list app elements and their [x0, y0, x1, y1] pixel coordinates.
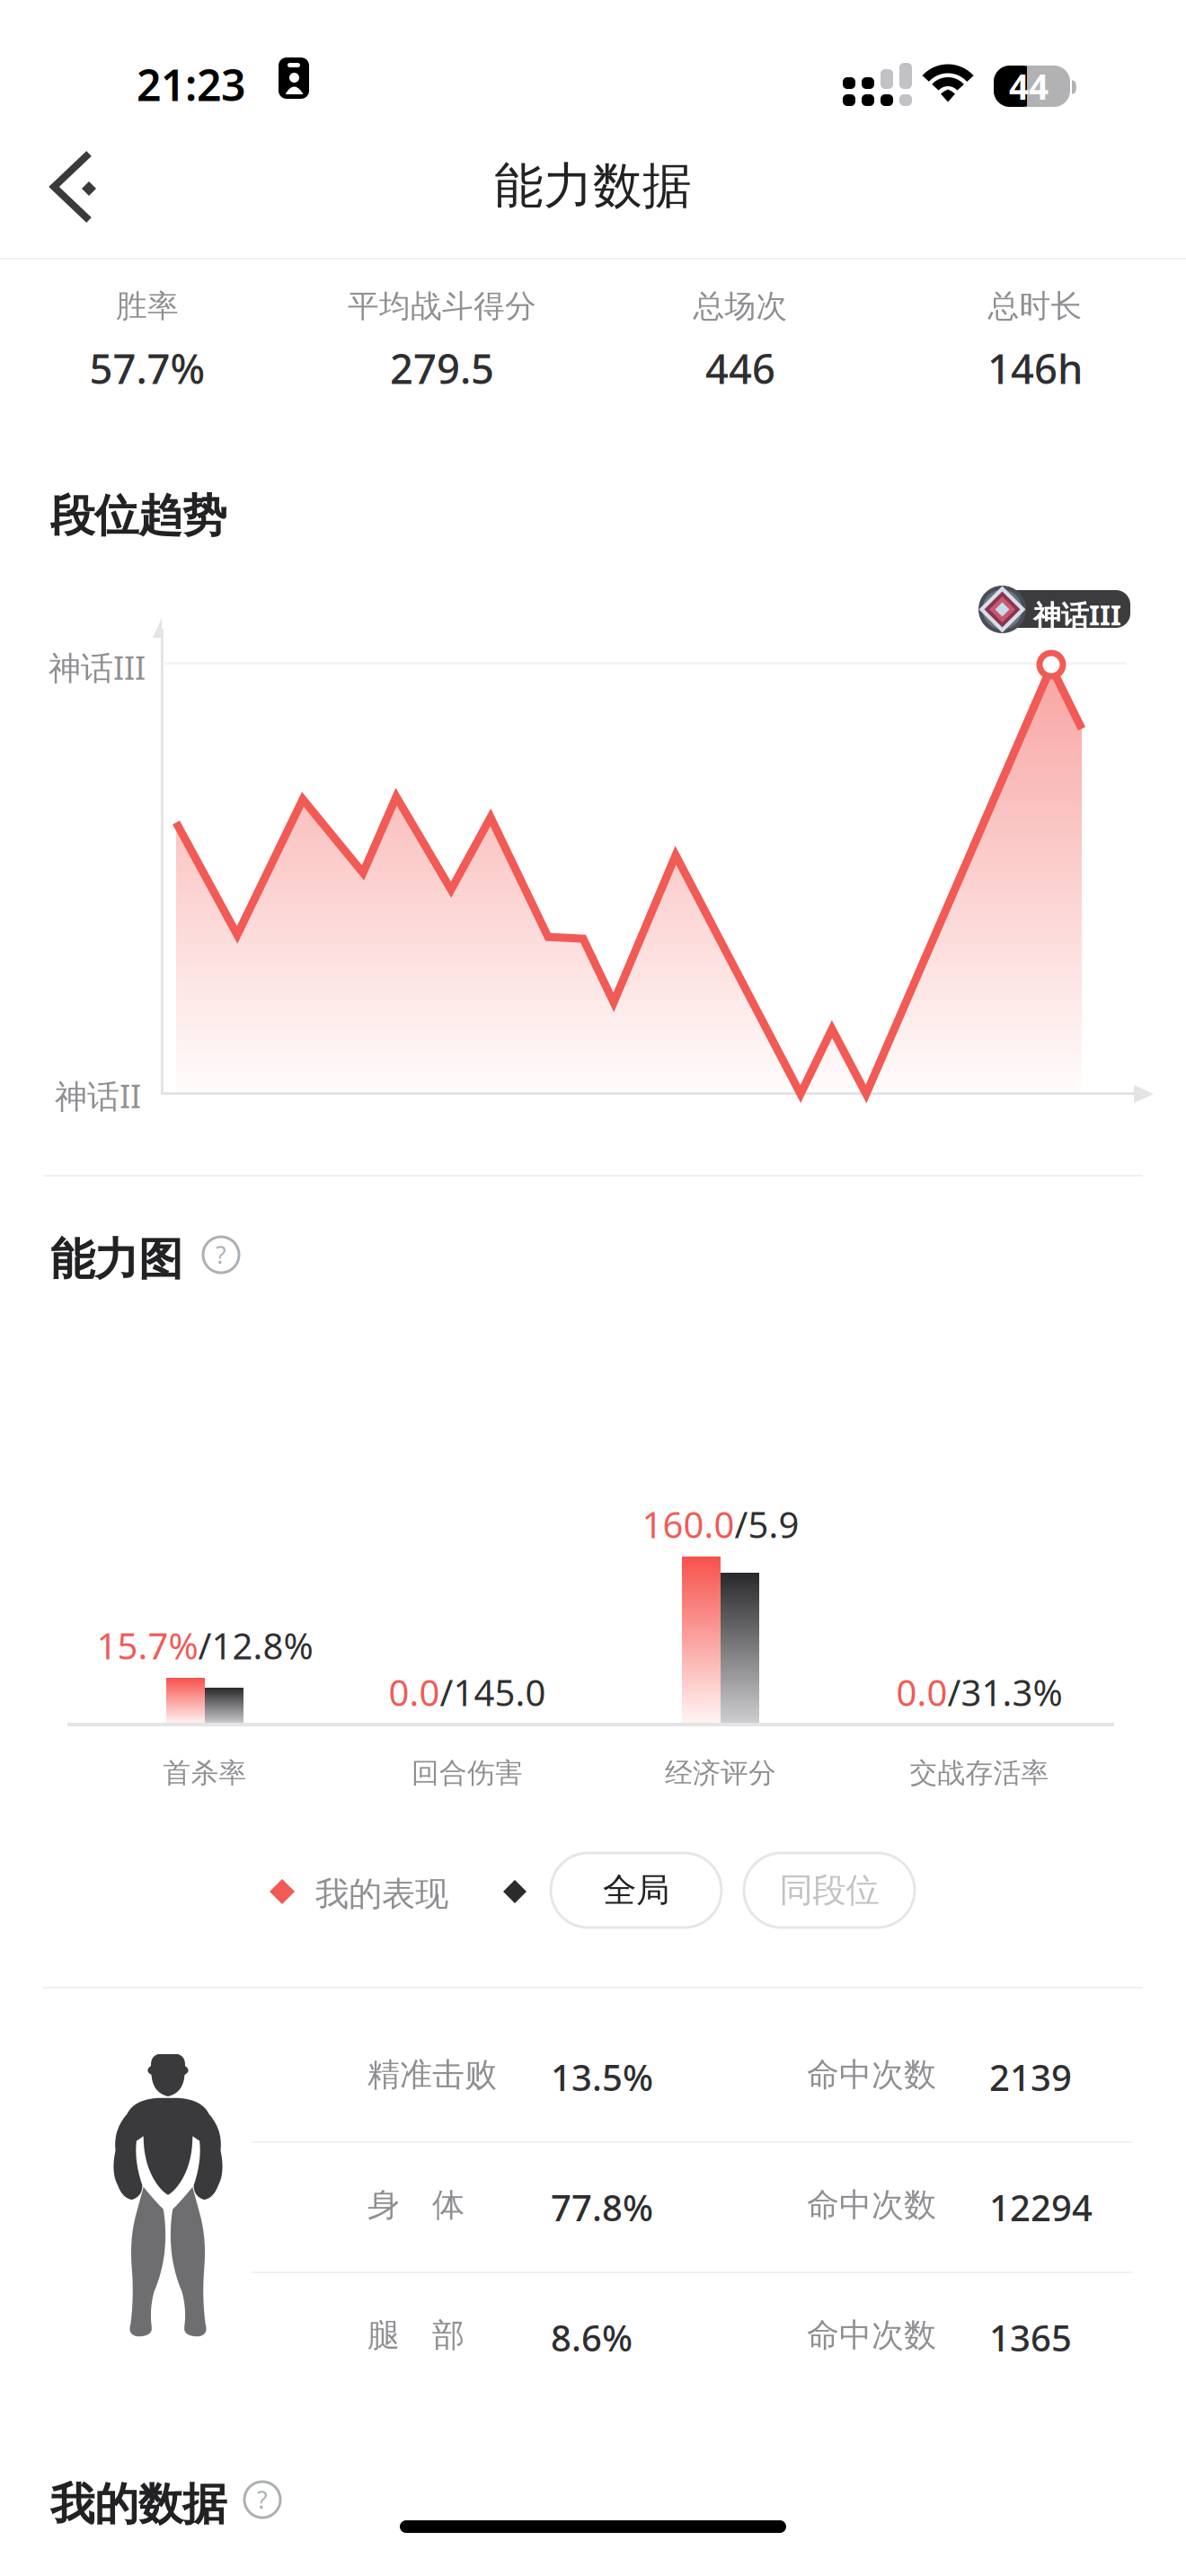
button[interactable]: Back [49, 150, 139, 225]
staticText: 命中次数 [807, 2055, 936, 2095]
staticText: 交战存活率 [910, 1756, 1049, 1790]
staticText: ? [257, 2484, 268, 2516]
staticText: 160.0 [642, 1500, 735, 1548]
staticText: 命中次数 [807, 2185, 936, 2225]
staticText: 神话II [55, 1074, 141, 1117]
staticText: 13.5% [551, 2053, 653, 2101]
button[interactable]: 全局 [551, 1853, 721, 1928]
staticText: 我的数据 [50, 2477, 226, 2532]
staticText: 精准击败 [367, 2055, 497, 2095]
staticText: 胜率 [116, 287, 179, 325]
staticText: /145.0 [440, 1668, 546, 1716]
staticText: 平均战斗得分 [348, 287, 536, 325]
staticText: 44 [1009, 63, 1049, 109]
staticText: 57.7% [89, 341, 205, 395]
staticText: 腿 部 [367, 2316, 465, 2355]
staticText: 446 [705, 341, 775, 395]
staticText: 12294 [989, 2183, 1093, 2231]
staticText: 0.0 [896, 1668, 947, 1716]
staticText: 我的表现 [315, 1874, 448, 1915]
staticText: 2139 [989, 2053, 1072, 2101]
staticText: 8.6% [551, 2314, 633, 2361]
staticText: 能力数据 [494, 156, 692, 216]
staticText: 命中次数 [807, 2316, 936, 2355]
staticText: /31.3% [947, 1668, 1062, 1716]
staticText: 能力图 [50, 1232, 182, 1287]
staticText: ? [216, 1239, 226, 1271]
staticText: 总时长 [988, 287, 1082, 325]
staticText: /5.9 [735, 1500, 799, 1548]
staticText: 身 体 [367, 2185, 465, 2225]
staticText: 279.5 [390, 341, 494, 395]
staticText: 全局 [603, 1870, 669, 1911]
staticText: 段位趋势 [50, 489, 226, 543]
staticText: 21:23 [137, 56, 245, 113]
staticText: 神话III [1033, 596, 1121, 633]
staticText: /12.8% [198, 1622, 313, 1669]
staticText: 首杀率 [163, 1756, 247, 1790]
staticText: 总场次 [693, 287, 788, 325]
staticText: 同段位 [779, 1870, 879, 1911]
staticText: 146h [987, 341, 1083, 395]
staticText: 回合伤害 [412, 1756, 523, 1790]
staticText: 15.7% [97, 1622, 198, 1669]
staticText: 神话III [49, 646, 146, 689]
button[interactable]: 同段位 [744, 1853, 915, 1928]
staticText: 1365 [989, 2314, 1072, 2361]
staticText: 0.0 [389, 1668, 440, 1716]
staticText: 经济评分 [665, 1756, 776, 1790]
staticText: 77.8% [551, 2183, 653, 2231]
